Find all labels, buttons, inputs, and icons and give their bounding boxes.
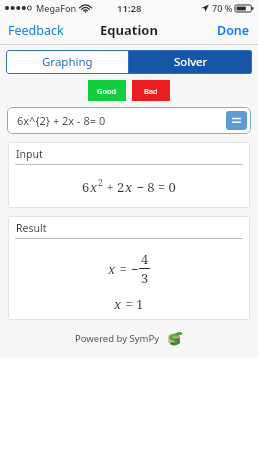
staticText: x [90, 178, 98, 196]
staticText: 70 % [212, 2, 233, 14]
staticText: Equation [100, 21, 158, 39]
staticText: = 1 [122, 295, 144, 313]
staticText: = [116, 260, 131, 278]
button[interactable]: Solver [129, 50, 252, 74]
button[interactable]: 6x^{2} + 2x - 8= 0 [7, 107, 251, 134]
staticText: Graphing [42, 54, 93, 70]
staticText: Powered by SymPy [75, 332, 160, 345]
staticText: 3 [141, 269, 149, 287]
staticText: x [114, 295, 122, 313]
staticText: Solver [174, 54, 208, 70]
staticText: 6 [82, 178, 90, 196]
staticText: MegaFon [36, 2, 77, 14]
button[interactable]: Good [88, 80, 126, 101]
staticText: Bad [144, 86, 158, 96]
staticText: 4 [141, 250, 149, 268]
staticText: x [108, 260, 116, 278]
staticText: − 8 = 0 [133, 178, 176, 196]
staticText: 2 [98, 177, 103, 189]
staticText: 11:28 [117, 2, 142, 15]
staticText: 6x^{2} + 2x - 8= 0 [17, 113, 106, 128]
staticText: Input [16, 147, 43, 161]
staticText: Done [217, 22, 250, 39]
button[interactable]: Done [209, 18, 258, 43]
button[interactable]: Solve equation [226, 111, 247, 130]
staticText: Result [16, 221, 47, 235]
staticText: + 2 [103, 178, 125, 196]
staticText: − [131, 260, 139, 278]
staticText: Feedback [8, 22, 64, 39]
staticText: Good [97, 86, 117, 96]
button[interactable]: Feedback [0, 18, 72, 43]
staticText: x [125, 178, 133, 196]
button[interactable]: Graphing [6, 50, 128, 74]
button[interactable]: Bad [132, 80, 170, 101]
